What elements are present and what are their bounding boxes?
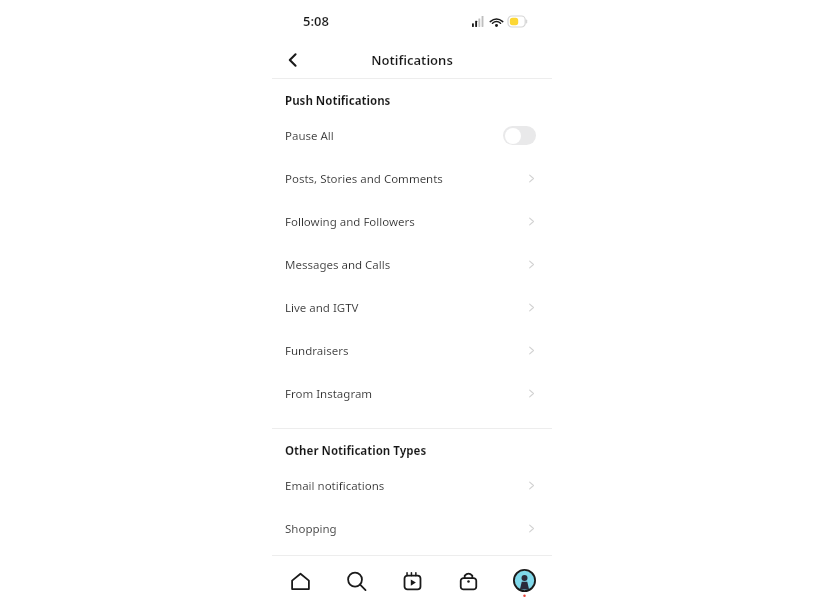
button[interactable]: Home <box>272 556 328 606</box>
staticText: Notifications <box>371 51 453 69</box>
button[interactable]: Reels <box>384 556 440 606</box>
staticText: Messages and Calls <box>285 257 391 273</box>
staticText: Push Notifications <box>285 93 391 109</box>
staticText: Following and Followers <box>285 214 415 230</box>
button[interactable]: Messages and Calls <box>272 243 552 286</box>
staticText: From Instagram <box>285 386 373 402</box>
staticText: Shopping <box>285 521 337 537</box>
staticText: Pause All <box>285 128 334 144</box>
staticText: Other Notification Types <box>285 443 427 459</box>
button[interactable]: Pause All <box>272 114 552 157</box>
button[interactable]: Back <box>276 43 310 77</box>
button[interactable]: Following and Followers <box>272 200 552 243</box>
staticText: 5:08 <box>303 12 329 30</box>
button[interactable]: Email notifications <box>272 464 552 507</box>
button[interactable]: Shop <box>440 556 496 606</box>
button[interactable]: Live and IGTV <box>272 286 552 329</box>
button[interactable]: Search <box>328 556 384 606</box>
button[interactable]: Profile <box>496 556 552 606</box>
button[interactable]: From Instagram <box>272 372 552 415</box>
staticText: Live and IGTV <box>285 300 359 316</box>
button[interactable]: Fundraisers <box>272 329 552 372</box>
button[interactable]: Posts, Stories and Comments <box>272 157 552 200</box>
staticText: Fundraisers <box>285 343 349 359</box>
staticText: Email notifications <box>285 478 385 494</box>
button[interactable]: Shopping <box>272 507 552 550</box>
staticText: Posts, Stories and Comments <box>285 171 443 187</box>
